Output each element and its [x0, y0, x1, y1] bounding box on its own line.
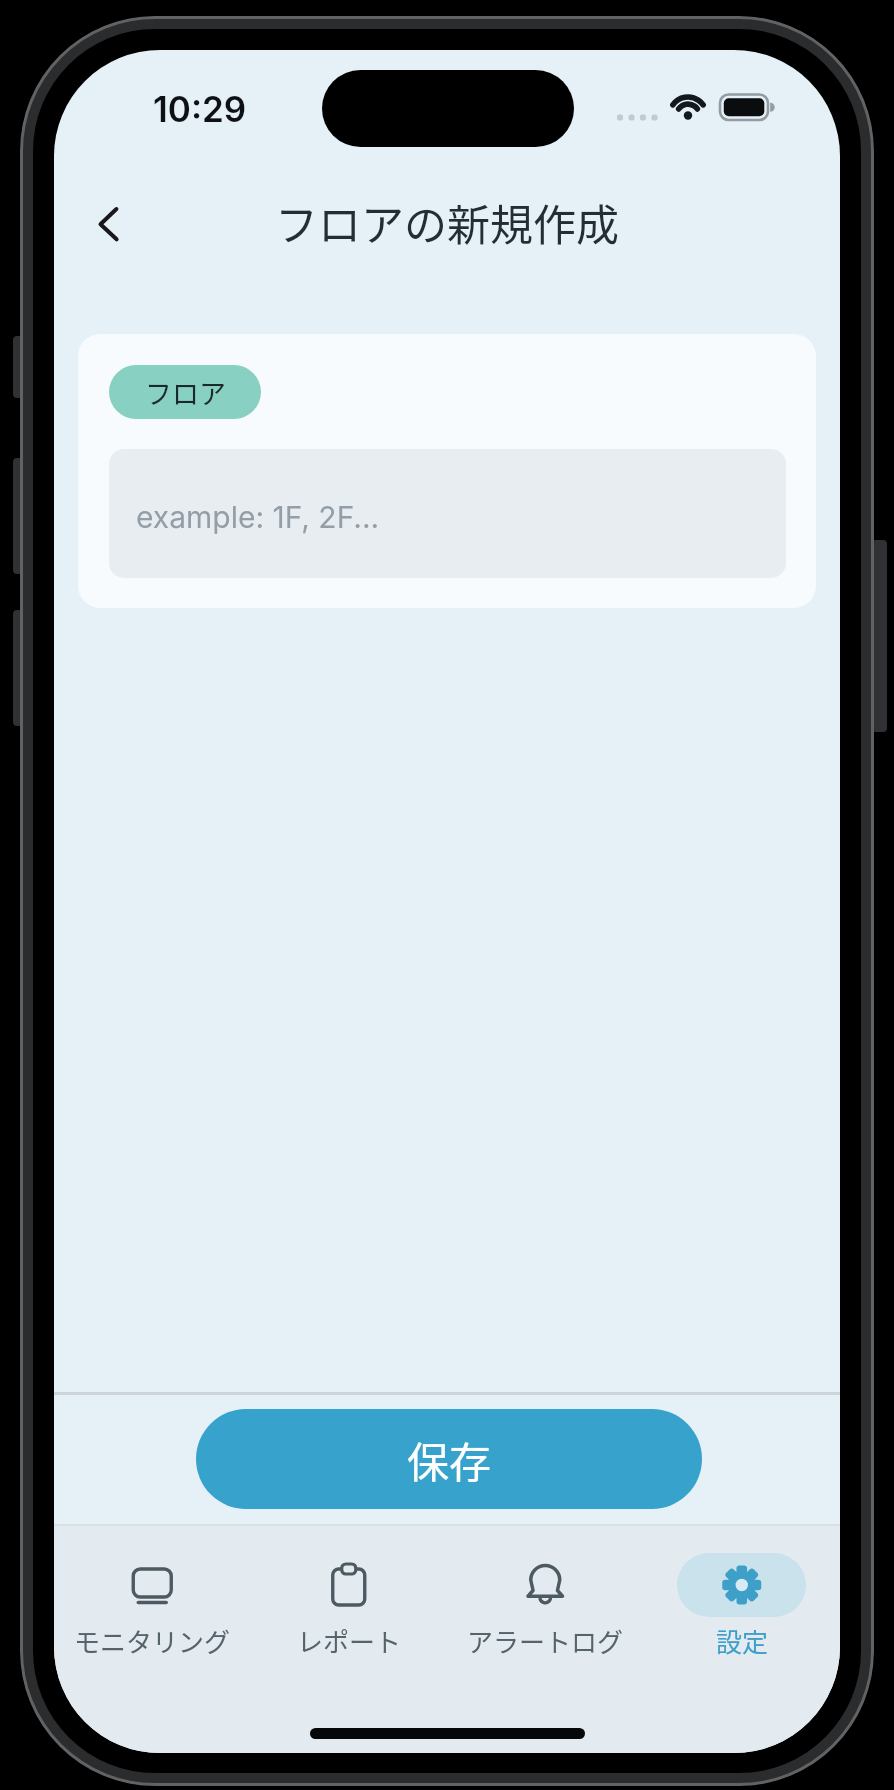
staticText: example: 1F, 2F... [136, 499, 380, 535]
staticText: 設定 [716, 1622, 769, 1656]
button[interactable] [84, 195, 144, 255]
button[interactable]: 保存 [196, 1409, 702, 1509]
button[interactable] [445, 1548, 645, 1728]
staticText: レポート [297, 1622, 402, 1656]
staticText: フロア [145, 373, 226, 412]
staticText: モニタリング [74, 1622, 231, 1656]
button[interactable]: フロア [109, 365, 261, 419]
staticText: 保存 [407, 1429, 492, 1490]
button[interactable] [54, 1548, 252, 1728]
staticText: 10:29 [153, 88, 247, 130]
staticText: フロアの新規作成 [275, 191, 619, 251]
button[interactable]: example: 1F, 2F... [109, 449, 786, 578]
staticText: アラートログ [467, 1622, 624, 1656]
button[interactable] [249, 1548, 449, 1728]
button[interactable] [642, 1548, 840, 1728]
